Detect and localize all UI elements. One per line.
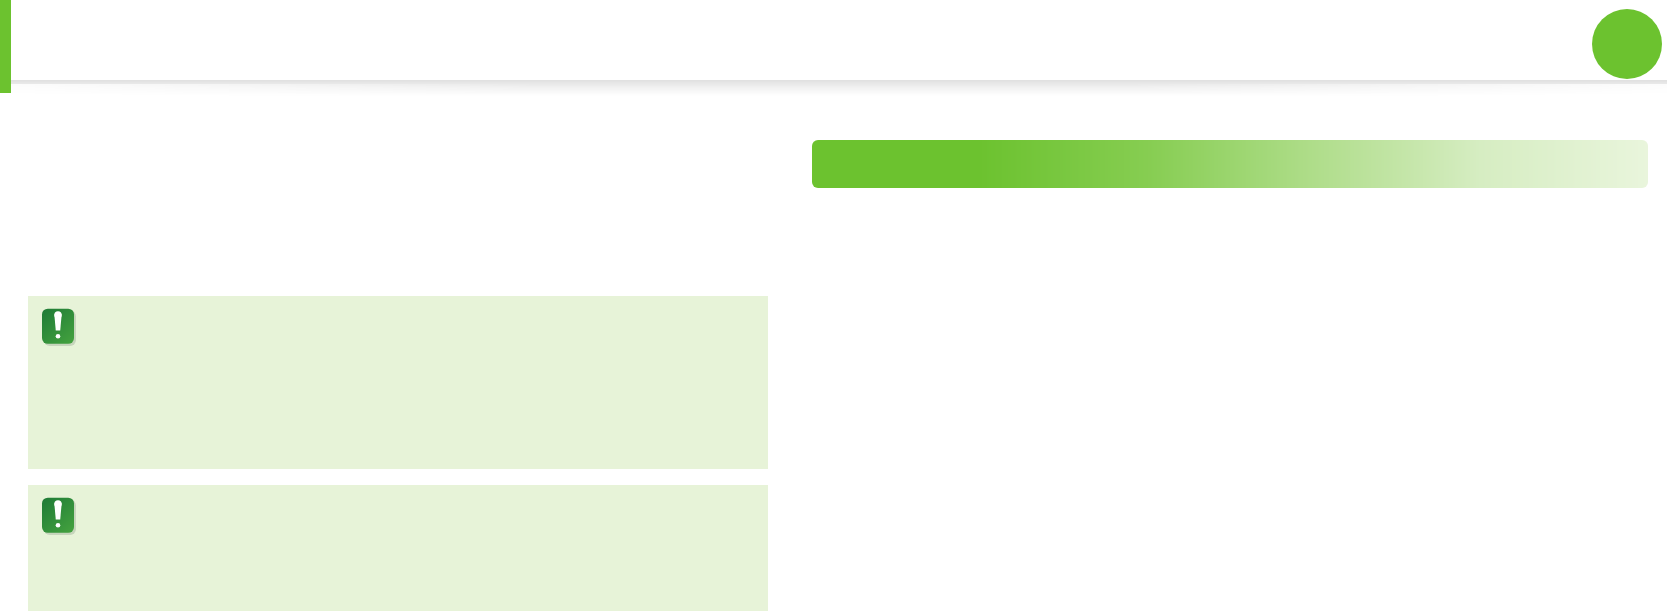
button[interactable]: Important notice [28,296,768,469]
button[interactable]: Important notice [42,306,82,350]
button[interactable] [812,140,1648,188]
button[interactable]: Important notice [42,495,82,539]
button[interactable]: Profile [1592,9,1662,79]
button[interactable]: Important notice [28,485,768,611]
